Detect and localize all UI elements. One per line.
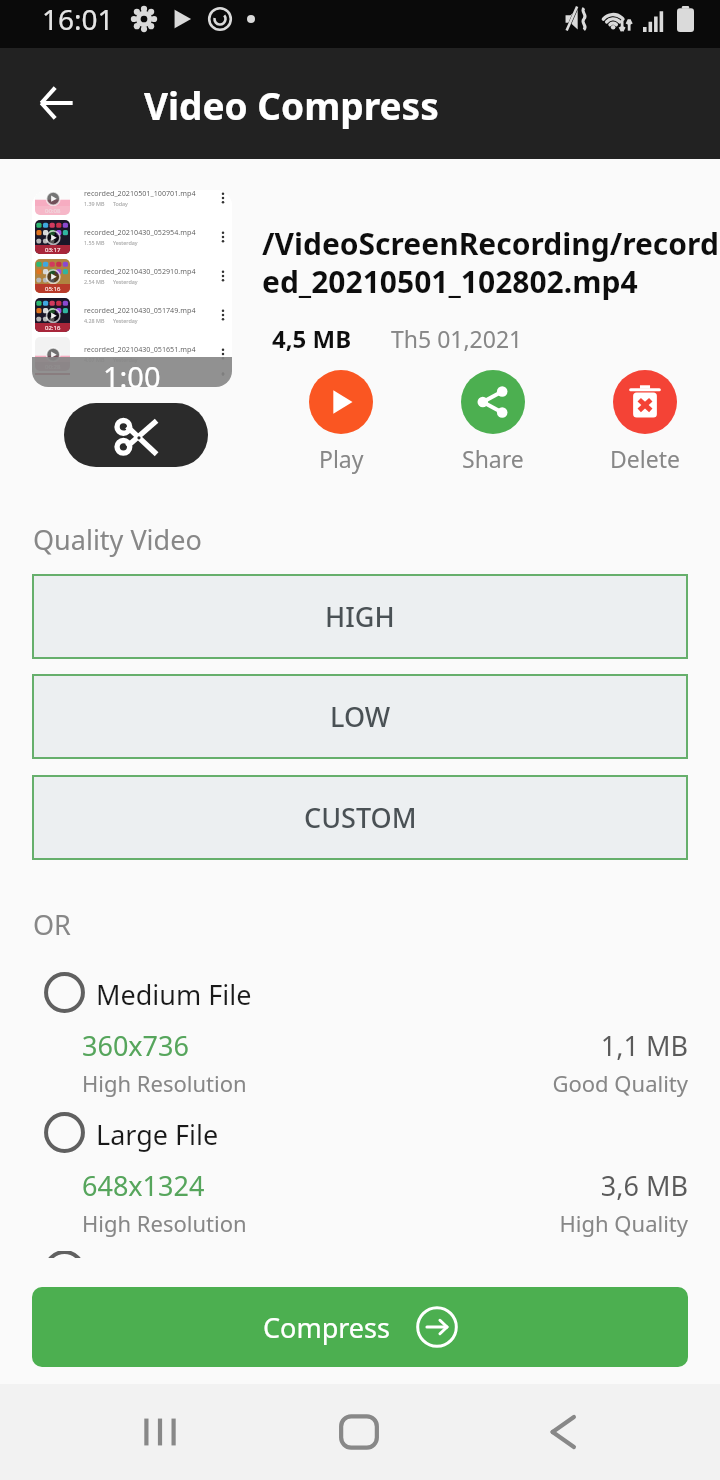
staticText: Video Compress: [144, 80, 439, 130]
button[interactable]: Recents: [125, 1397, 195, 1467]
button[interactable]: Play: [271, 370, 411, 474]
button[interactable]: Large File: [0, 1112, 720, 1242]
staticText: High Resolution: [82, 1068, 247, 1098]
button[interactable]: Trim video: [64, 403, 208, 467]
button[interactable]: Home: [324, 1397, 394, 1467]
staticText: recorded_20210430_052910.mp4: [84, 266, 196, 276]
staticText: OR: [33, 906, 71, 943]
button[interactable]: HIGH: [32, 574, 688, 659]
staticText: Quality Video: [33, 521, 202, 558]
staticText: 4.28 MB Yesterday: [84, 317, 138, 324]
staticText: LOW: [330, 698, 391, 735]
staticText: /VideoScreenRecording/record ed_20210501…: [262, 223, 719, 302]
button[interactable]: Compress: [32, 1287, 688, 1367]
staticText: 3,6 MB: [0, 1167, 688, 1204]
staticText: 16:01: [42, 0, 114, 38]
staticText: recorded_20210430_051737.mp4: [84, 373, 196, 375]
staticText: Large File: [96, 1116, 219, 1153]
staticText: 1.39 MB Today: [84, 200, 128, 207]
staticText: 1,1 MB: [0, 1027, 688, 1064]
staticText: HIGH: [325, 598, 395, 635]
button[interactable]: Delete: [575, 370, 715, 474]
staticText: 1:00: [103, 357, 161, 387]
staticText: Play: [319, 443, 364, 474]
staticText: recorded_20210430_051651.mp4: [84, 344, 196, 354]
staticText: High Resolution: [82, 1208, 247, 1238]
staticText: 4.07 MB Yesterday: [84, 356, 138, 363]
staticText: 1.55 MB Yesterday: [84, 239, 138, 246]
staticText: Th5 01,2021: [391, 323, 523, 354]
staticText: 05:16: [45, 285, 61, 293]
staticText: CUSTOM: [304, 799, 417, 836]
staticText: Delete: [610, 443, 680, 474]
staticText: 02:16: [45, 324, 61, 332]
staticText: 4,5 MB: [272, 322, 352, 355]
button[interactable]: LOW: [32, 674, 688, 759]
staticText: recorded_20210430_051749.mp4: [84, 305, 196, 315]
staticText: High Quality: [0, 1208, 688, 1238]
button[interactable]: Share: [423, 370, 563, 474]
staticText: 360x736: [82, 1027, 189, 1064]
staticText: 03:17: [45, 246, 61, 254]
staticText: 2.54 MB Yesterday: [84, 278, 138, 285]
staticText: Good Quality: [0, 1068, 688, 1098]
staticText: recorded_20210501_100701.mp4: [84, 190, 196, 198]
staticText: 648x1324: [82, 1167, 205, 1204]
button[interactable]: Back: [24, 71, 88, 135]
button[interactable]: Back: [528, 1397, 598, 1467]
button[interactable]: CUSTOM: [32, 775, 688, 860]
staticText: Medium File: [96, 976, 252, 1013]
staticText: 00:08: [45, 207, 61, 215]
button[interactable]: Video thumbnail: [32, 190, 232, 387]
staticText: Compress: [263, 1309, 390, 1346]
button[interactable]: Medium File: [0, 972, 720, 1102]
staticText: recorded_20210430_052954.mp4: [84, 227, 196, 237]
staticText: Share: [462, 443, 524, 474]
